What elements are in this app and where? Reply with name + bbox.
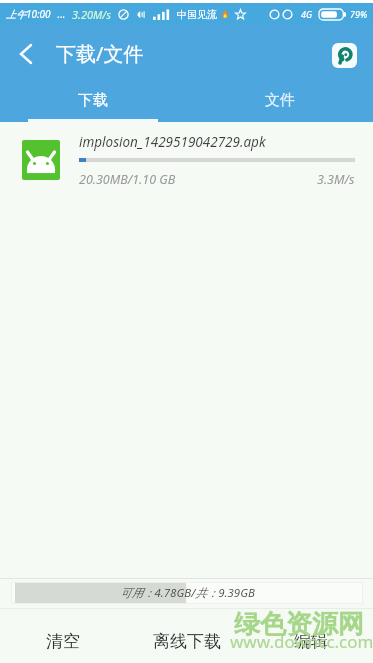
staticText: 中国见流 bbox=[177, 8, 217, 21]
staticText: 离线下载 bbox=[153, 631, 221, 652]
button[interactable]: 清空 bbox=[0, 609, 125, 663]
staticText: 可用：4.78GB/共：9.39GB bbox=[120, 585, 255, 601]
staticText: 编辑 bbox=[294, 631, 328, 652]
button[interactable]: implosion_1429519042729.apk bbox=[0, 131, 373, 189]
staticText: 上午10:00 bbox=[6, 7, 51, 21]
button[interactable]: 下载 bbox=[0, 83, 186, 122]
staticText: 文件 bbox=[265, 91, 295, 110]
staticText: 20.30MB/1.10 GB bbox=[79, 171, 176, 188]
staticText: 下载/文件 bbox=[56, 40, 144, 67]
button[interactable]: Back bbox=[0, 31, 52, 77]
button[interactable]: 编辑 bbox=[249, 609, 373, 663]
staticText: 清空 bbox=[46, 631, 80, 652]
staticText: ... bbox=[57, 7, 66, 21]
staticText: 79% bbox=[350, 8, 368, 20]
button[interactable]: 离线下载 bbox=[125, 609, 249, 663]
staticText: www.downcc.com bbox=[230, 630, 373, 653]
staticText: 下载 bbox=[78, 91, 108, 110]
staticText: 3.3M/s bbox=[317, 171, 355, 188]
staticText: implosion_1429519042729.apk bbox=[79, 133, 266, 151]
staticText: 4G bbox=[301, 8, 313, 20]
button[interactable]: 文件 bbox=[186, 83, 373, 122]
button[interactable]: Application bbox=[332, 43, 357, 68]
staticText: 绿色资源网 bbox=[234, 608, 364, 641]
staticText: 3.20M/s bbox=[72, 7, 111, 22]
